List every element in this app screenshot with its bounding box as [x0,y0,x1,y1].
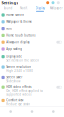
staticText: On, HDR effect applied to supported vide… [6,89,43,96]
staticText: High 2340 x 1080 [6,69,33,73]
staticText: Wallpaper & theme [6,20,32,23]
staticText: Sound [3,6,12,10]
button[interactable]: Tab [21,107,43,116]
staticText: Notif. [20,6,28,10]
staticText: Reduce eye strain [6,102,30,106]
button[interactable]: Notif. [16,5,32,12]
staticText: Home screen [6,13,24,17]
button[interactable]: Screen resolution [0,63,64,73]
staticText: Screen resolution [6,65,31,69]
staticText: Set items on the screen [6,59,39,62]
staticText: Comfort view [6,99,23,102]
button[interactable]: Home screen [0,12,64,18]
button[interactable]: Font [0,25,64,32]
button[interactable]: Wallpaper [48,5,64,12]
button[interactable]: Sound [0,5,16,12]
staticText: App scaling [6,47,22,51]
button[interactable]: Wallpaper & theme [0,18,64,25]
staticText: Display side [6,55,22,58]
button[interactable]: More options [54,1,60,4]
button[interactable]: Toggle [56,86,62,89]
button[interactable]: Profile [46,1,49,4]
staticText: HDR video effects [6,85,31,89]
button[interactable]: HDR video effects [0,84,64,96]
button[interactable]: Comfort view [0,96,64,107]
button[interactable]: Display side [0,52,64,63]
staticText: Always-on display [6,40,29,44]
button[interactable]: Search [49,1,54,4]
button[interactable]: Tab [0,107,21,116]
staticText: Home touch buttons [6,34,35,37]
staticText: Display [35,6,44,10]
staticText: Wallpaper [49,6,62,10]
button[interactable]: Always-on display [0,39,64,46]
staticText: Font [6,27,12,30]
staticText: Settings [1,0,18,5]
button[interactable]: App scaling [0,46,64,52]
button[interactable]: Tab [43,107,64,116]
staticText: Slideshow [6,79,20,83]
staticText: Screen saver [6,76,22,79]
button[interactable]: Screen saver [0,73,64,84]
button[interactable]: Display [32,5,48,12]
button[interactable]: Toggle [56,41,62,44]
button[interactable]: Home touch buttons [0,32,64,39]
